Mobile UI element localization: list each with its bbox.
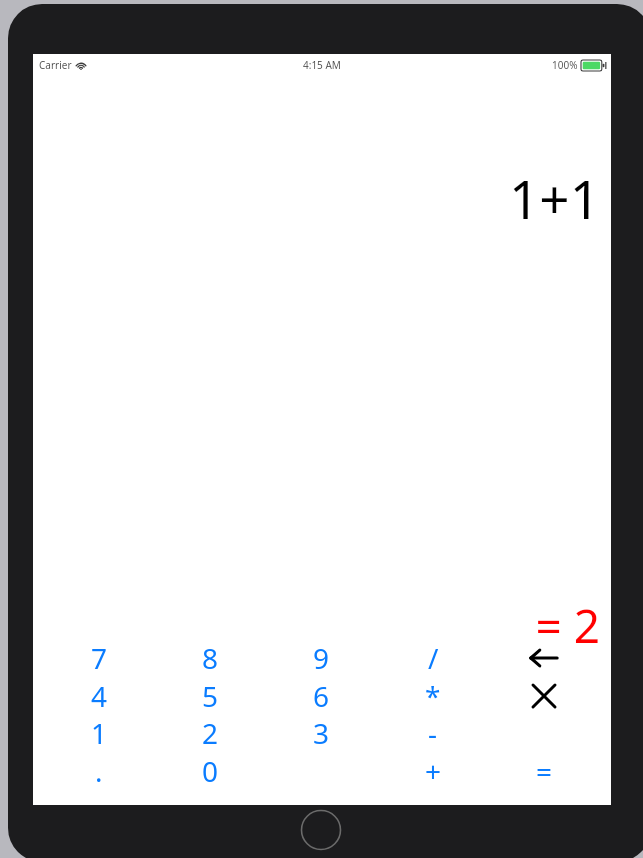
button[interactable]: 3 bbox=[295, 707, 347, 759]
button[interactable]: 8 bbox=[184, 632, 236, 684]
staticText: / bbox=[428, 639, 439, 677]
staticText: 4 bbox=[91, 677, 108, 715]
button[interactable]: 4 bbox=[73, 670, 125, 722]
staticText: = 2 bbox=[535, 594, 600, 657]
button[interactable]: Backspace bbox=[518, 632, 570, 684]
button[interactable]: 0 bbox=[184, 745, 236, 797]
staticText: 4:15 AM bbox=[303, 58, 341, 72]
staticText: + bbox=[425, 752, 442, 790]
staticText: 7 bbox=[91, 639, 108, 677]
staticText: 9 bbox=[313, 639, 330, 677]
staticText: 100% bbox=[552, 58, 578, 72]
button[interactable]: Clear bbox=[518, 670, 570, 722]
staticText: 1+1 bbox=[509, 162, 600, 234]
staticText: 2 bbox=[202, 714, 219, 752]
staticText: - bbox=[428, 714, 438, 752]
staticText: = bbox=[536, 752, 553, 790]
staticText: 1 bbox=[91, 714, 108, 752]
staticText: 6 bbox=[313, 677, 330, 715]
button[interactable]: / bbox=[407, 632, 459, 684]
staticText: * bbox=[425, 677, 441, 715]
button[interactable]: * bbox=[407, 670, 459, 722]
other: Home bbox=[300, 809, 342, 851]
button[interactable]: . bbox=[73, 745, 125, 797]
button[interactable]: 2 bbox=[184, 707, 236, 759]
staticText: 5 bbox=[202, 677, 219, 715]
button[interactable]: 5 bbox=[184, 670, 236, 722]
staticText: . bbox=[95, 752, 103, 790]
button[interactable]: 6 bbox=[295, 670, 347, 722]
staticText: 3 bbox=[313, 714, 330, 752]
button[interactable]: 9 bbox=[295, 632, 347, 684]
staticText: Carrier bbox=[39, 58, 72, 72]
button[interactable]: + bbox=[407, 745, 459, 797]
button[interactable]: = bbox=[518, 745, 570, 797]
staticText: 0 bbox=[202, 752, 219, 790]
staticText: 8 bbox=[202, 639, 219, 677]
button[interactable]: - bbox=[407, 707, 459, 759]
button[interactable]: 7 bbox=[73, 632, 125, 684]
button[interactable]: 1 bbox=[73, 707, 125, 759]
